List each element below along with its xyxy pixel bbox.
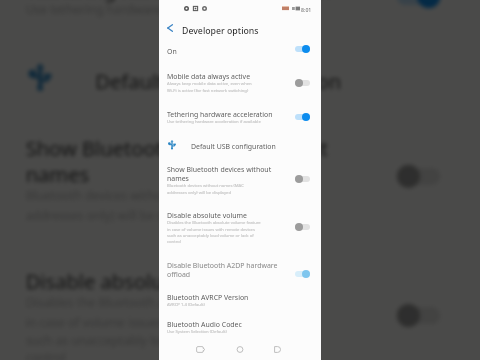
button[interactable]: Recents: [271, 342, 285, 356]
staticText: 8:01: [301, 6, 312, 13]
staticText: Default USB configuration: [95, 69, 342, 95]
staticText: Bluetooth Audio Codec: [167, 320, 287, 329]
staticText: Use System Selection (Default): [167, 329, 287, 335]
button[interactable]: Switch on: [295, 43, 316, 54]
staticText: Developer options: [182, 25, 259, 37]
staticText: Disable Bluetooth A2DP hardware offload: [167, 261, 287, 279]
button[interactable]: Default USB configuration: [166, 139, 278, 152]
button[interactable]: Back: [193, 342, 207, 356]
staticText: Bluetooth devices without names (MAC add…: [167, 183, 287, 195]
button[interactable]: Switch on: [295, 268, 316, 279]
staticText: On: [167, 47, 287, 56]
button[interactable]: Back: [162, 20, 178, 36]
staticText: Disable absolute volume: [26, 269, 374, 295]
staticText: Disables the Bluetooth absolute volume f…: [167, 220, 287, 244]
button[interactable]: Switch on: [295, 111, 316, 122]
staticText: Default USB configuration: [191, 142, 276, 151]
staticText: Mobile data always active: [167, 72, 287, 81]
staticText: Show Bluetooth devices without names: [26, 136, 374, 188]
button[interactable]: Switch off: [295, 173, 316, 184]
staticText: Use tethering hardware acceleration if a…: [167, 119, 287, 125]
staticText: Tethering hardware acceleration: [167, 110, 287, 119]
staticText: Bluetooth devices without names (MAC add…: [26, 188, 374, 223]
button[interactable]: Home: [233, 342, 247, 356]
staticText: Bluetooth AVRCP Version: [167, 293, 287, 302]
staticText: Always keep mobile data active, even whe…: [167, 81, 287, 93]
staticText: AVRCP 1.4 (Default): [167, 302, 287, 308]
button[interactable]: Switch off: [295, 77, 316, 88]
staticText: Use tethering hardware acceleration if a…: [26, 2, 374, 20]
button[interactable]: Switch off: [295, 221, 316, 232]
staticText: Show Bluetooth devices without names: [167, 165, 287, 183]
staticText: Disable absolute volume: [167, 211, 287, 220]
staticText: Tethering hardware acceleration: [26, 0, 374, 2]
staticText: Disables the Bluetooth absolute volume f…: [26, 295, 374, 360]
